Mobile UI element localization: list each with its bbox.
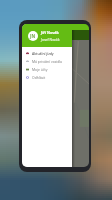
button[interactable]: JN — [22, 24, 72, 47]
button[interactable]: Moje účty — [22, 65, 72, 73]
staticText: Moje účty — [32, 67, 48, 72]
staticText: Má privátní vozidla — [32, 59, 62, 64]
staticText: Jiří Novák — [41, 30, 59, 35]
staticText: JN — [30, 33, 36, 39]
button[interactable]: Aktuální jízdy — [22, 49, 72, 57]
staticText: Josef Novák — [41, 37, 60, 42]
staticText: Aktuální jízdy — [32, 51, 54, 56]
staticText: Odhlásit — [32, 75, 46, 80]
button[interactable]: Odhlásit — [22, 73, 72, 81]
button[interactable]: Má privátní vozidla — [22, 57, 72, 65]
